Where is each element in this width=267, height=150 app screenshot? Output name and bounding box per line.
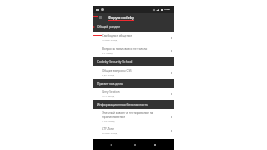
button[interactable]: CTF Zone: [93, 125, 174, 137]
staticText: Общий раздел: [97, 25, 121, 29]
staticText: 4 дн. назад: [102, 74, 115, 77]
staticText: Привет как дела: [97, 82, 123, 86]
staticText: 1 час назад: [102, 120, 115, 123]
staticText: Информационная безопасность: [97, 103, 148, 107]
staticText: 19 ч. назад: [102, 95, 115, 98]
button[interactable]: Home: [130, 140, 140, 150]
button[interactable]: Общий раздел: [93, 22, 174, 32]
staticText: Grey Section: [102, 90, 120, 94]
button[interactable]: Back: [106, 140, 116, 150]
button[interactable]: Свободное общение: [93, 32, 174, 44]
button[interactable]: Привет как дела: [93, 79, 174, 88]
button[interactable]: Recent apps: [150, 140, 160, 150]
staticText: Этичный хакинг и тестирование на проникн…: [102, 111, 168, 119]
button[interactable]: Общие вопросы CSS: [93, 66, 174, 79]
staticText: 10 мин. назад: [102, 39, 118, 42]
staticText: 3 ч. назад: [102, 52, 113, 55]
staticText: Codeby Security School: [97, 60, 133, 64]
button[interactable]: Codeby Security School: [93, 57, 174, 66]
staticText: 10:05: [164, 8, 170, 11]
staticText: Общие вопросы CSS: [102, 69, 132, 73]
staticText: Свободное общение: [102, 34, 133, 38]
staticText: Форум codeby: [108, 15, 134, 20]
staticText: CTF Zone: [102, 127, 114, 131]
button[interactable]: Grey Section: [93, 88, 174, 100]
staticText: Вопросы новичков и не только: [102, 47, 148, 51]
button[interactable]: Вопросы новичков и не только: [93, 44, 174, 57]
button[interactable]: Open navigation menu: [97, 13, 103, 22]
staticText: 29 мин. назад: [102, 132, 118, 135]
button[interactable]: Этичный хакинг и тестирование на проникн…: [93, 109, 174, 125]
button[interactable]: Информационная безопасность: [93, 100, 174, 109]
